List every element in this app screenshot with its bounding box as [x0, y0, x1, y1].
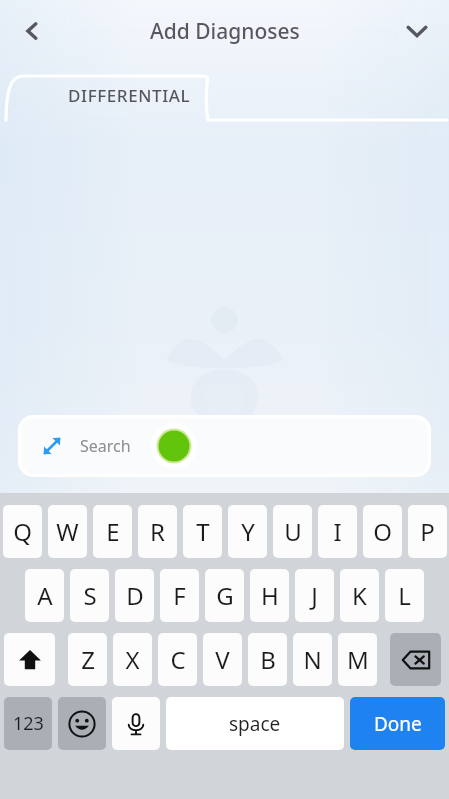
button[interactable]: Y: [228, 505, 267, 558]
button[interactable]: Emoji: [58, 697, 106, 750]
staticText: M: [347, 643, 369, 676]
button[interactable]: space: [166, 697, 344, 750]
button[interactable]: F: [160, 569, 199, 622]
staticText: J: [311, 579, 318, 612]
button[interactable]: E: [93, 505, 132, 558]
button[interactable]: K: [340, 569, 379, 622]
button[interactable]: Collapse: [393, 7, 441, 55]
button[interactable]: R: [138, 505, 177, 558]
staticText: W: [56, 515, 79, 548]
staticText: T: [196, 515, 210, 548]
button[interactable]: Shift: [4, 633, 55, 686]
button[interactable]: Q: [3, 505, 42, 558]
staticText: C: [170, 643, 186, 676]
button[interactable]: Z: [68, 633, 107, 686]
staticText: E: [106, 515, 120, 548]
button[interactable]: M: [338, 633, 377, 686]
button[interactable]: A: [25, 569, 64, 622]
button[interactable]: H: [250, 569, 289, 622]
button[interactable]: Expand: [38, 432, 66, 460]
button[interactable]: J: [295, 569, 334, 622]
staticText: Y: [241, 515, 255, 548]
button[interactable]: D: [115, 569, 154, 622]
staticText: P: [420, 515, 435, 548]
staticText: Q: [13, 515, 32, 548]
staticText: I: [333, 515, 342, 548]
staticText: B: [260, 643, 276, 676]
staticText: DIFFERENTIAL: [68, 84, 191, 107]
button[interactable]: X: [113, 633, 152, 686]
button[interactable]: T: [183, 505, 222, 558]
staticText: space: [229, 711, 281, 737]
staticText: O: [373, 515, 392, 548]
button[interactable]: C: [158, 633, 197, 686]
button[interactable]: Voice input: [112, 697, 160, 750]
staticText: V: [215, 643, 230, 676]
button[interactable]: L: [385, 569, 424, 622]
button[interactable]: Done: [350, 697, 445, 750]
button[interactable]: O: [363, 505, 402, 558]
button[interactable]: DIFFERENTIAL: [0, 62, 449, 132]
staticText: N: [303, 643, 322, 676]
staticText: F: [173, 579, 186, 612]
button[interactable]: G: [205, 569, 244, 622]
button[interactable]: S: [70, 569, 109, 622]
button[interactable]: Record: [151, 423, 197, 469]
staticText: Done: [374, 711, 422, 737]
button[interactable]: V: [203, 633, 242, 686]
staticText: H: [261, 579, 279, 612]
button[interactable]: I: [318, 505, 357, 558]
button[interactable]: B: [248, 633, 287, 686]
button[interactable]: Expand: [18, 415, 431, 477]
staticText: U: [284, 515, 302, 548]
staticText: Search: [80, 435, 131, 457]
staticText: Add Diagnoses: [150, 17, 300, 46]
button[interactable]: N: [293, 633, 332, 686]
button[interactable]: U: [273, 505, 312, 558]
button[interactable]: Back: [8, 7, 56, 55]
button[interactable]: P: [408, 505, 447, 558]
staticText: L: [398, 579, 411, 612]
button[interactable]: 123: [4, 697, 52, 750]
staticText: X: [125, 643, 140, 676]
staticText: 123: [13, 711, 44, 736]
staticText: K: [352, 579, 367, 612]
staticText: R: [150, 515, 165, 548]
staticText: A: [37, 579, 53, 612]
staticText: S: [83, 579, 97, 612]
staticText: G: [216, 579, 234, 612]
staticText: D: [126, 579, 144, 612]
button[interactable]: Backspace: [390, 633, 441, 686]
staticText: Z: [81, 643, 95, 676]
button[interactable]: W: [48, 505, 87, 558]
